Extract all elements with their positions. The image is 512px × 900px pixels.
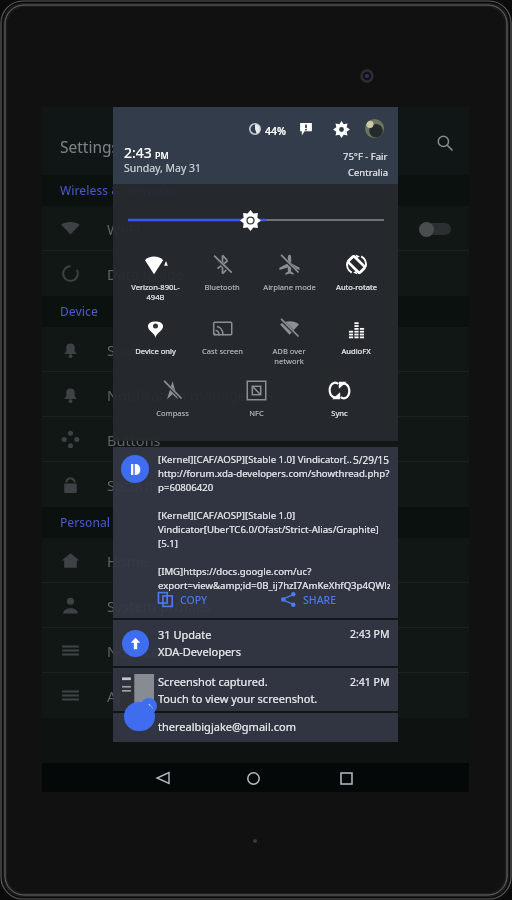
staticText: Sync bbox=[331, 408, 348, 418]
staticText: Wireless & networks bbox=[60, 182, 177, 198]
button[interactable]: Device only bbox=[122, 318, 188, 376]
staticText: Data usage bbox=[107, 264, 184, 284]
staticText: Device bbox=[60, 303, 98, 319]
staticText: NFC bbox=[249, 408, 264, 418]
button[interactable]: Notifications bbox=[42, 628, 469, 673]
staticText: [Kernel][CAF/AOSP][Stable 1.0] Vindicato… bbox=[158, 453, 390, 592]
button[interactable]: Recent apps bbox=[332, 764, 360, 792]
button[interactable]: AudioFX bbox=[323, 318, 389, 376]
staticText: Security bbox=[107, 475, 162, 495]
button[interactable]: Home bbox=[42, 538, 469, 583]
button[interactable]: Airplane mode bbox=[256, 254, 322, 312]
staticText: 2:43 PM bbox=[350, 627, 390, 641]
button[interactable]: therealbigjake@gmail.com bbox=[113, 713, 398, 742]
button[interactable]: Back bbox=[149, 764, 177, 792]
staticText: therealbigjake@gmail.com bbox=[158, 719, 296, 734]
staticText: 5/29/15 bbox=[353, 453, 390, 467]
staticText: Verizon-890L- 494B bbox=[131, 282, 180, 302]
staticText: Sunday, May 31 bbox=[124, 161, 202, 175]
button[interactable]: NFC bbox=[223, 380, 289, 438]
staticText: Touch to view your screenshot. bbox=[158, 691, 318, 706]
staticText: 44% bbox=[265, 124, 286, 138]
button[interactable]: Data usage bbox=[42, 251, 469, 296]
button[interactable]: Search bbox=[429, 127, 461, 159]
button[interactable]: Bluetooth bbox=[189, 254, 255, 312]
button[interactable]: COPY bbox=[158, 586, 208, 613]
staticText: Airplane mode bbox=[263, 282, 316, 292]
staticText: Bluetooth bbox=[204, 282, 240, 292]
staticText: XDA-Developers bbox=[158, 644, 241, 659]
staticText: Home bbox=[107, 551, 149, 571]
button[interactable]: Screenshot captured. bbox=[113, 668, 398, 711]
staticText: 75°F - Fair bbox=[343, 150, 388, 163]
staticText: Notifications bbox=[107, 641, 194, 661]
staticText: 2:41 PM bbox=[350, 675, 390, 689]
staticText: Apps bbox=[107, 686, 142, 706]
staticText: System profiles bbox=[107, 596, 212, 616]
staticText: Device only bbox=[135, 346, 176, 356]
staticText: COPY bbox=[180, 593, 208, 607]
staticText: Wi-Fi bbox=[107, 219, 141, 239]
button[interactable]: Sounds bbox=[42, 327, 469, 372]
button[interactable]: Apps bbox=[42, 673, 469, 718]
staticText: ADB over network bbox=[272, 346, 306, 366]
button[interactable]: Security bbox=[42, 462, 469, 507]
button[interactable]: Notification manager bbox=[42, 372, 469, 417]
staticText: Screenshot captured. bbox=[158, 674, 268, 689]
button[interactable]: Cast screen bbox=[189, 318, 255, 376]
button[interactable]: Compass bbox=[139, 380, 205, 438]
button[interactable]: ADB over network bbox=[256, 318, 322, 376]
staticText: SHARE bbox=[303, 593, 336, 607]
staticText: Personal bbox=[60, 514, 111, 530]
button[interactable]: Wi-Fi bbox=[42, 206, 469, 251]
button[interactable]: Sync bbox=[306, 380, 372, 438]
staticText: 2:43 bbox=[124, 143, 152, 162]
button[interactable]: Auto-rotate bbox=[323, 254, 389, 312]
staticText: Compass bbox=[156, 408, 189, 418]
button[interactable]: User profile bbox=[365, 119, 384, 138]
button[interactable]: Verizon-890L- 494B bbox=[122, 254, 188, 312]
staticText: Notification manager bbox=[107, 385, 252, 405]
button[interactable]: SHARE bbox=[281, 586, 336, 613]
staticText: PM bbox=[155, 149, 169, 161]
staticText: Auto-rotate bbox=[336, 282, 377, 292]
staticText: AudioFX bbox=[341, 346, 371, 356]
button[interactable]: Buttons bbox=[42, 417, 469, 462]
staticText: 31 Update bbox=[158, 627, 212, 642]
staticText: Sounds bbox=[107, 340, 158, 360]
button[interactable]: Home bbox=[239, 764, 267, 792]
button[interactable]: System profiles bbox=[42, 583, 469, 628]
staticText: Centralia bbox=[348, 166, 388, 179]
staticText: Buttons bbox=[107, 430, 161, 450]
button[interactable]: Alerts bbox=[296, 119, 316, 139]
staticText: Cast screen bbox=[202, 346, 243, 356]
button[interactable]: Settings bbox=[330, 118, 352, 140]
button[interactable]: 31 Update bbox=[113, 620, 398, 666]
staticText: Settings bbox=[60, 136, 119, 157]
